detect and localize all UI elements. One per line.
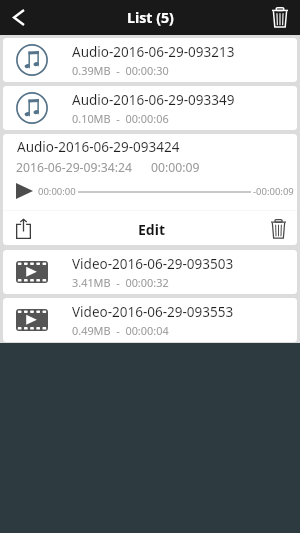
button[interactable]: Share (3, 211, 43, 245)
staticText: -00:00:09 (253, 185, 294, 198)
staticText: 3.41MB - 00:00:32 (72, 275, 169, 290)
button[interactable]: Video-2016-06-29-093553 (3, 298, 297, 342)
staticText: 0.39MB - 00:00:30 (72, 63, 169, 78)
button[interactable]: Delete (260, 211, 297, 245)
button[interactable]: Edit (43, 211, 260, 245)
staticText: Audio-2016-06-29-093349 (72, 91, 235, 109)
button[interactable]: Audio-2016-06-29-093213 (3, 38, 297, 82)
staticText: Audio-2016-06-29-093213 (72, 43, 235, 61)
staticText: Video-2016-06-29-093553 (72, 303, 234, 321)
staticText: Edit (138, 220, 165, 239)
staticText: 00:00:09 (151, 159, 200, 176)
button[interactable]: Delete all (265, 1, 295, 34)
staticText: 2016-06-29-09:34:24 (16, 159, 132, 176)
button[interactable]: Back (5, 2, 33, 33)
button[interactable]: Video-2016-06-29-093503 (3, 250, 297, 294)
staticText: Audio-2016-06-29-093424 (17, 138, 180, 156)
staticText: Video-2016-06-29-093503 (72, 255, 234, 273)
staticText: 00:00:00 (38, 185, 76, 198)
staticText: List (5) (127, 8, 174, 27)
staticText: 0.10MB - 00:00:06 (72, 111, 169, 126)
staticText: 0.49MB - 00:00:04 (72, 323, 169, 338)
button[interactable]: Play (16, 183, 33, 199)
button[interactable]: Audio-2016-06-29-093349 (3, 86, 297, 130)
